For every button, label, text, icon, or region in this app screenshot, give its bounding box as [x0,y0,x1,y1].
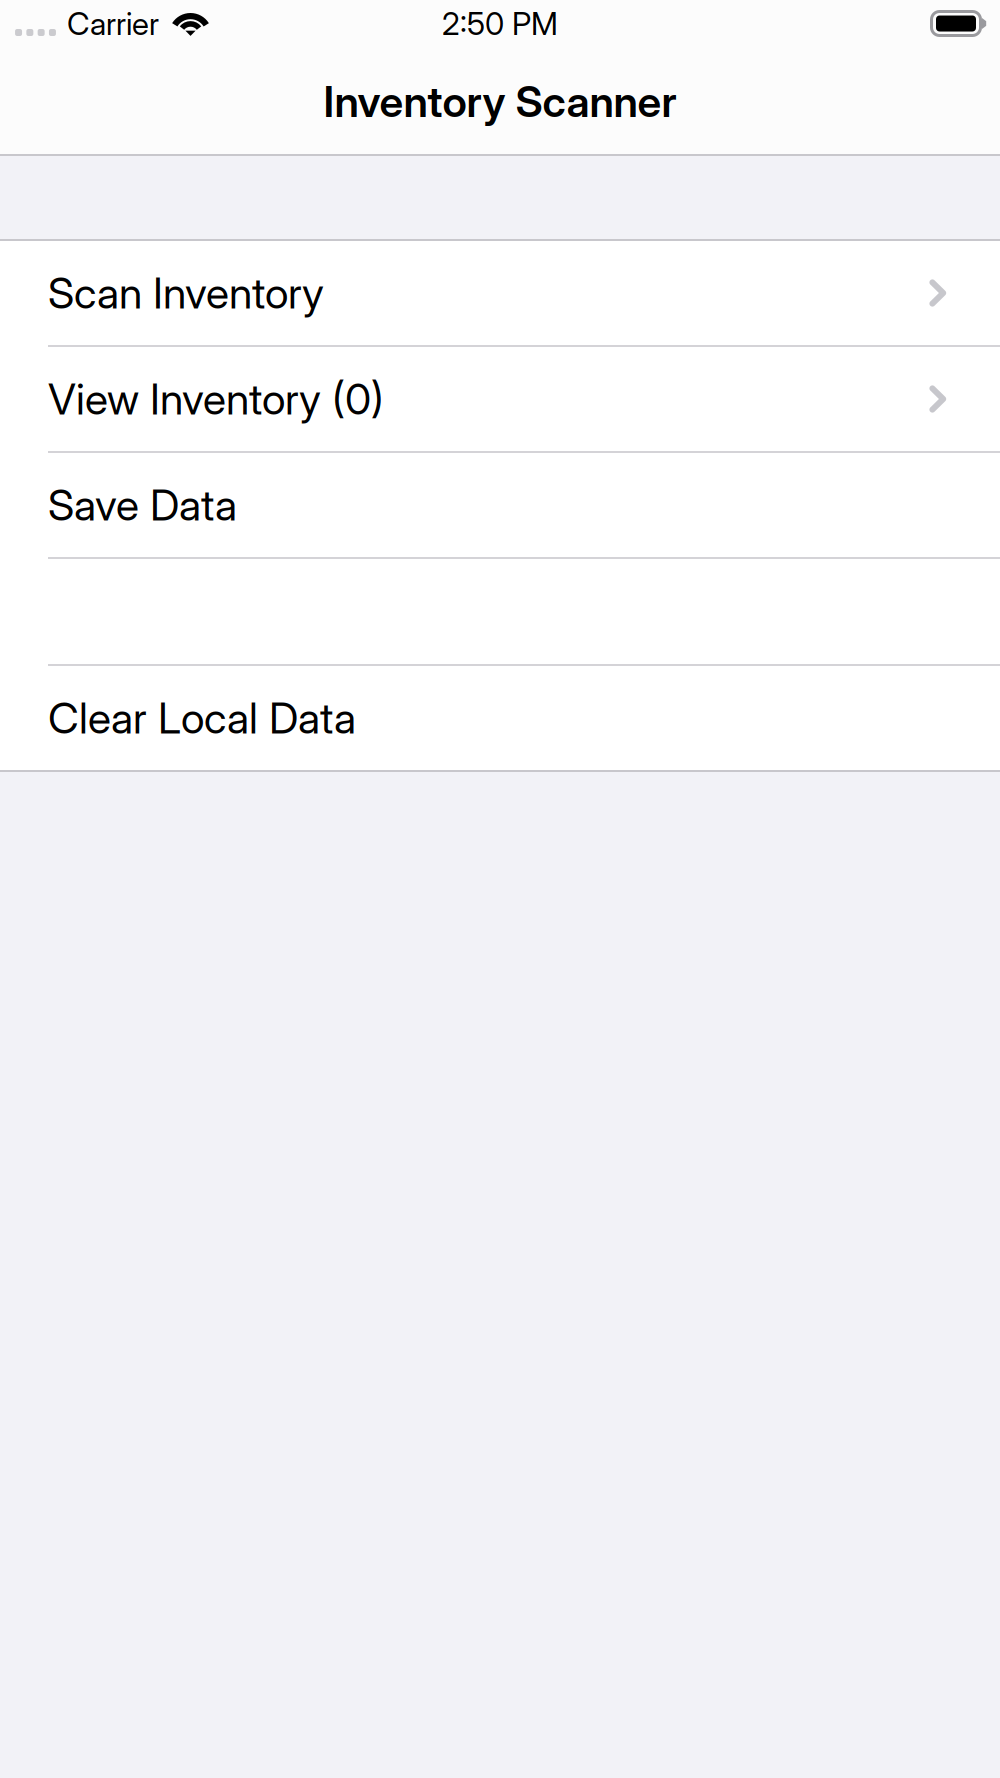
button[interactable]: Scan Inventory [0,241,1000,345]
staticText: View Inventory (0) [48,373,384,425]
staticText: 2:50 PM [442,4,558,42]
button[interactable]: Clear Local Data [0,666,1000,770]
staticText: Inventory Scanner [323,76,676,127]
staticText: Save Data [48,479,237,531]
staticText: Scan Inventory [48,267,324,319]
button[interactable]: View Inventory (0) [0,347,1000,451]
staticText: Clear Local Data [48,692,356,744]
button[interactable]: Save Data [0,453,1000,557]
staticText: Carrier [67,4,159,42]
